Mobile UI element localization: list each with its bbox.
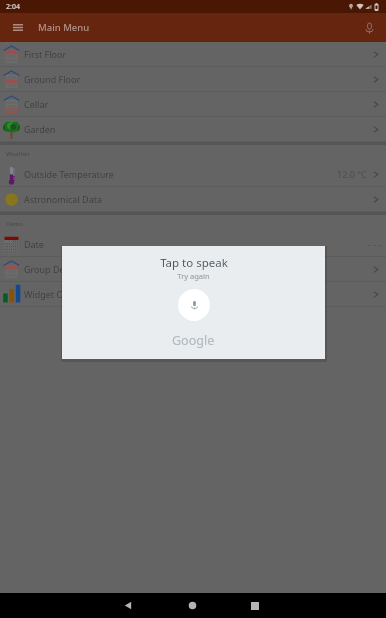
button[interactable]: Widget Overview <box>0 282 386 307</box>
button[interactable]: Group Demo <box>0 257 386 282</box>
button[interactable]: Recent apps <box>240 593 270 618</box>
button[interactable]: Cellar <box>0 92 386 117</box>
button[interactable]: Garden <box>0 117 386 142</box>
staticText: Cellar <box>24 98 49 110</box>
staticText: Main Menu <box>38 21 90 34</box>
button[interactable]: Home <box>177 593 207 618</box>
staticText: Group Demo <box>24 263 79 275</box>
staticText: Garden <box>24 123 56 135</box>
button[interactable]: Voice search <box>358 17 380 39</box>
staticText: Tap to speak <box>160 255 228 271</box>
staticText: Weather <box>6 150 30 158</box>
button[interactable]: Date <box>0 232 386 257</box>
staticText: Date <box>24 238 44 250</box>
staticText: First Floor <box>24 48 67 60</box>
staticText: Demo <box>6 220 24 228</box>
button[interactable]: Open navigation drawer <box>8 18 27 37</box>
button[interactable]: Astronomical Data <box>0 187 386 212</box>
staticText: Astronomical Data <box>24 193 102 205</box>
button[interactable]: Ground Floor <box>0 67 386 92</box>
staticText: 2:04 <box>6 2 20 12</box>
button[interactable]: Back <box>113 593 143 618</box>
button[interactable]: Outside Temperature <box>0 162 386 187</box>
staticText: Widget Overview <box>24 288 96 300</box>
staticText: Ground Floor <box>24 73 81 85</box>
staticText: Outside Temperature <box>24 168 114 180</box>
staticText: Google <box>172 332 215 349</box>
button[interactable]: Tap to speak <box>62 246 325 359</box>
staticText: 12.0 °C <box>337 168 367 180</box>
staticText: Try again <box>177 271 210 281</box>
button[interactable]: First Floor <box>0 42 386 67</box>
